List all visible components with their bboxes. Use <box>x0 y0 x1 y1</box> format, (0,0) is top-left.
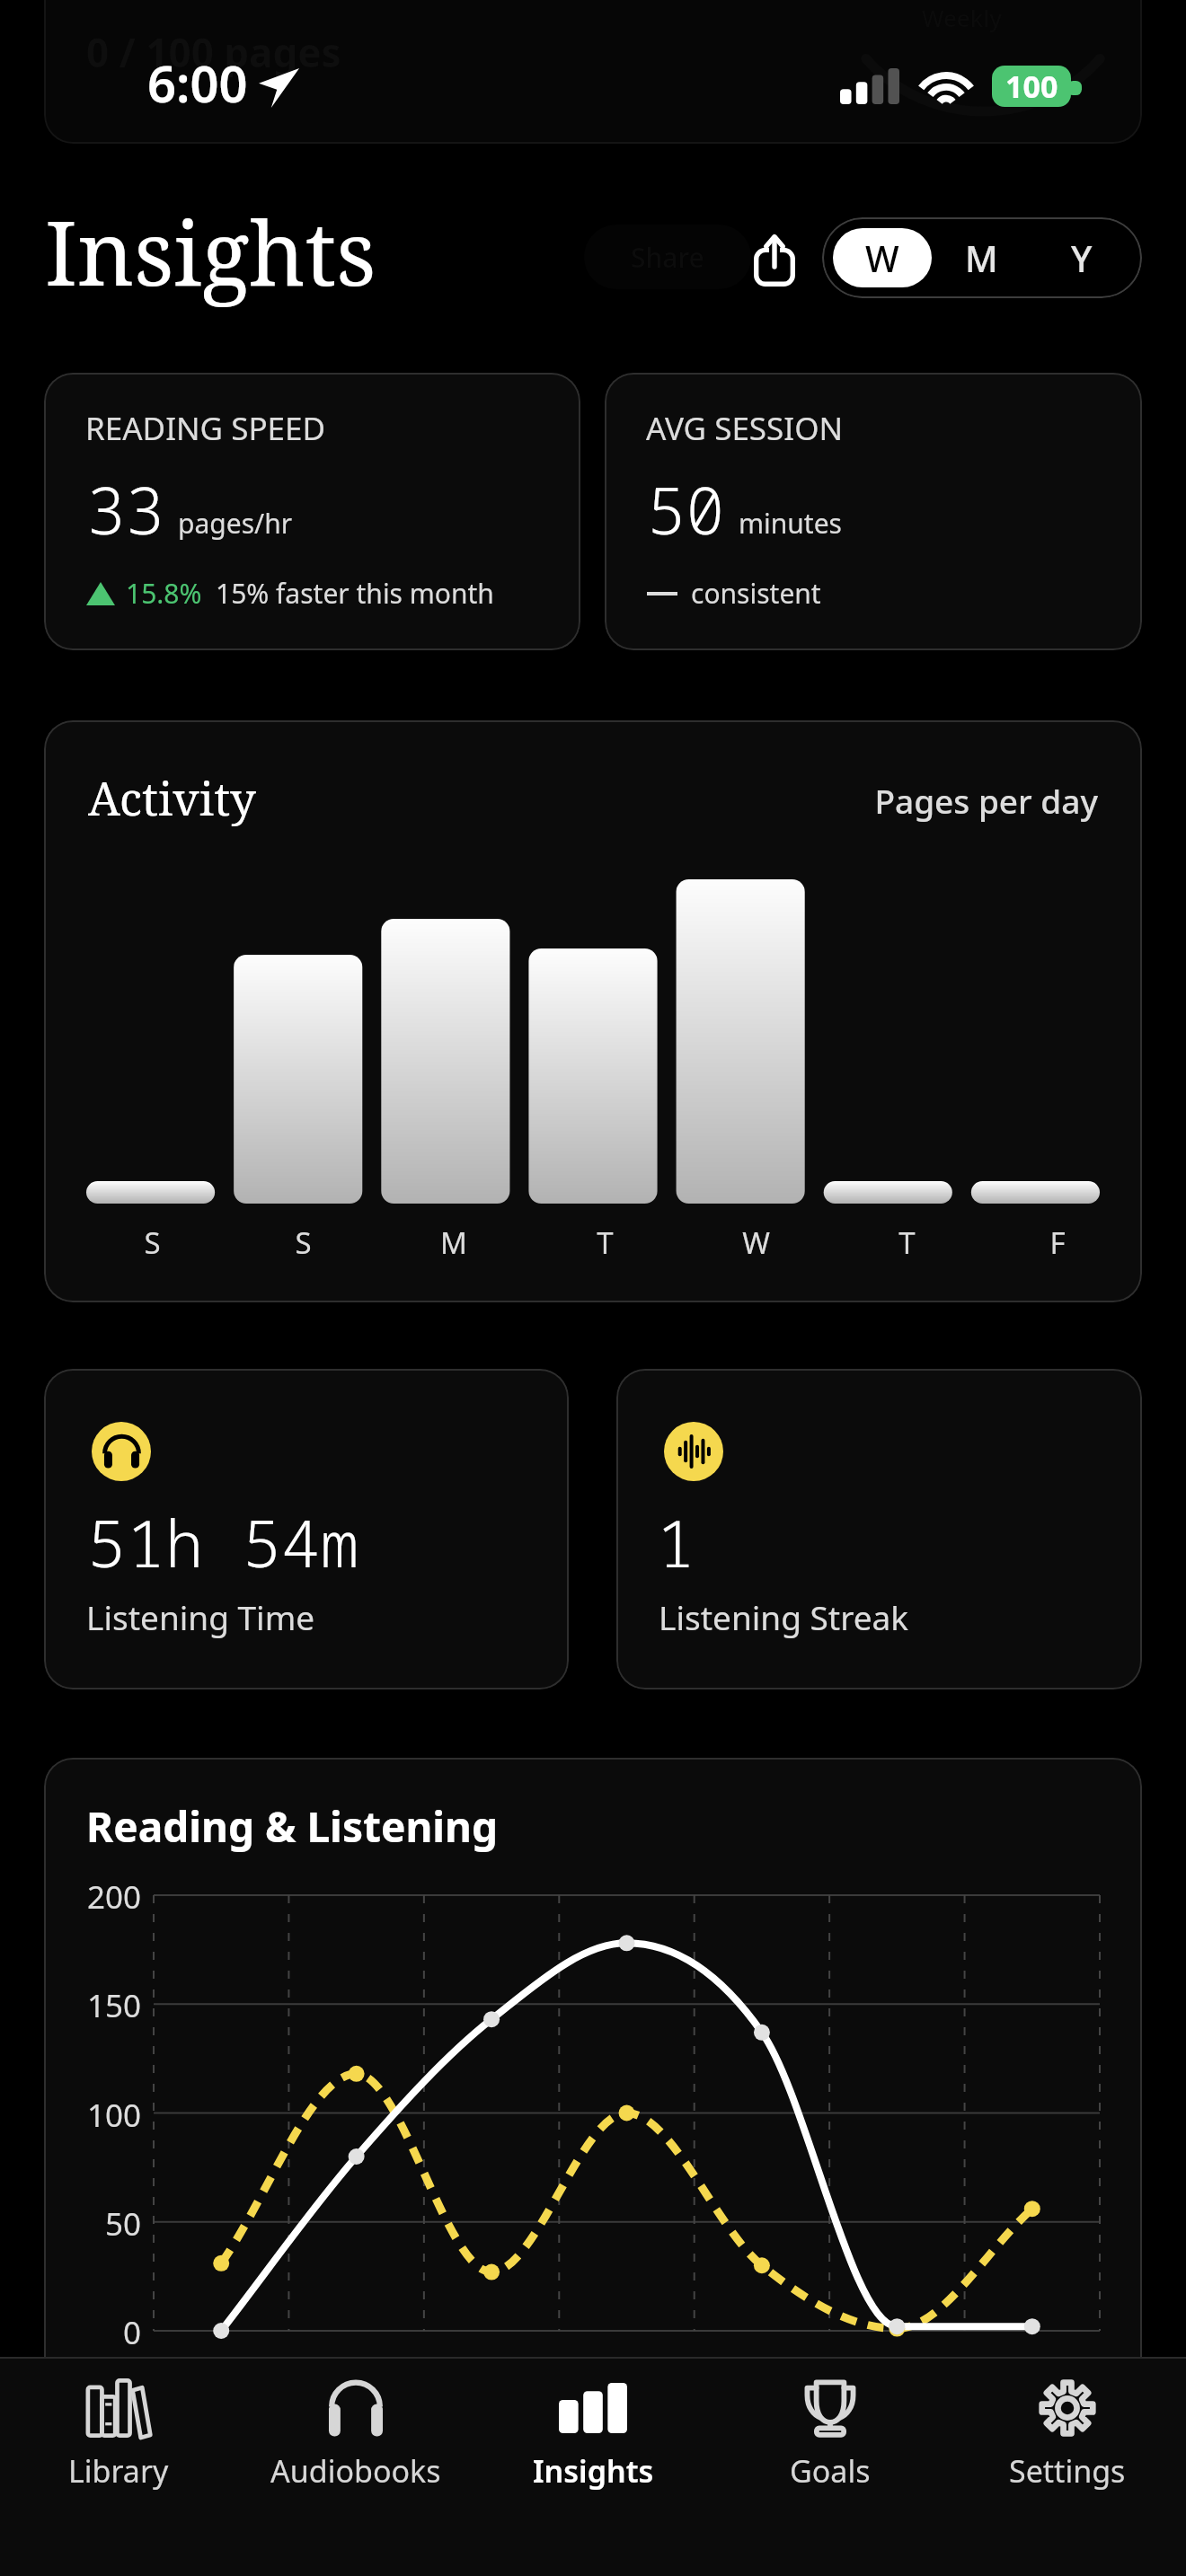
button[interactable]: Share <box>742 228 807 293</box>
staticText: W <box>865 234 899 282</box>
staticText: Activity <box>88 766 256 828</box>
staticText: Insights <box>533 2450 654 2492</box>
button[interactable]: 51h 54m <box>44 1369 569 1689</box>
staticText: S <box>295 1222 312 1263</box>
staticText: Listening Time <box>86 1594 315 1639</box>
staticText: 150 <box>44 1984 141 2027</box>
button[interactable]: Library <box>0 2377 237 2547</box>
staticText: Y <box>1071 234 1093 282</box>
staticText: 50 <box>44 2202 141 2245</box>
staticText: M <box>440 1222 467 1263</box>
staticText: Settings <box>1009 2450 1126 2492</box>
staticText: READING SPEED <box>85 407 326 450</box>
staticText: 51h 54m <box>87 1498 359 1586</box>
staticText: W <box>742 1222 770 1263</box>
button[interactable]: 1 <box>616 1369 1142 1689</box>
button[interactable]: AVG SESSION <box>605 373 1142 650</box>
button[interactable]: W <box>833 228 932 287</box>
staticText: T <box>898 1222 916 1263</box>
staticText: 0 <box>44 2311 141 2354</box>
staticText: 50 <box>647 465 725 553</box>
staticText: minutes <box>739 505 842 542</box>
staticText: Audiobooks <box>270 2450 441 2492</box>
staticText: Goals <box>790 2450 871 2492</box>
button[interactable]: M <box>932 228 1031 287</box>
staticText: 100 <box>44 2094 141 2137</box>
staticText: 1 <box>656 1498 695 1586</box>
staticText: 15.8% <box>126 575 202 612</box>
staticText: AVG SESSION <box>646 407 844 450</box>
staticText: 100 <box>1005 66 1058 107</box>
staticText: 6:00 <box>147 49 248 108</box>
staticText: consistent <box>691 575 821 612</box>
staticText: F <box>1049 1222 1066 1263</box>
staticText: Reading & Listening <box>86 1798 499 1855</box>
staticText: 200 <box>44 1875 141 1919</box>
staticText: 15% faster this month <box>216 575 494 612</box>
button[interactable]: Insights <box>474 2377 712 2547</box>
button[interactable]: Goals <box>712 2377 949 2547</box>
button[interactable]: Settings <box>949 2377 1186 2547</box>
staticText: S <box>144 1222 161 1263</box>
staticText: M <box>965 234 998 282</box>
staticText: Library <box>68 2450 169 2492</box>
staticText: 33 <box>86 465 164 553</box>
staticText: Listening Streak <box>659 1594 909 1639</box>
button[interactable]: Y <box>1031 228 1131 287</box>
staticText: Insights <box>45 191 376 311</box>
staticText: pages/hr <box>178 505 293 542</box>
staticText: Pages per day <box>44 778 1098 823</box>
button[interactable]: READING SPEED <box>44 373 580 650</box>
button[interactable]: Audiobooks <box>237 2377 474 2547</box>
staticText: T <box>597 1222 614 1263</box>
staticText: 0 / 100 pages <box>86 25 341 79</box>
